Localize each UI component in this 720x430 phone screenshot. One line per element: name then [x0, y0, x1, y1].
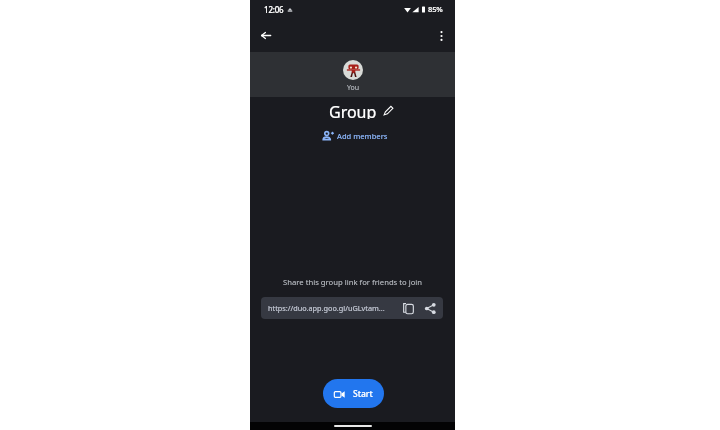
staticText: https://duo.app.goo.gl/uGLvtam...: [268, 303, 397, 313]
staticText: You: [347, 83, 360, 93]
staticText: Add members: [337, 131, 388, 141]
button[interactable]: Add members: [319, 129, 392, 143]
button[interactable]: Copy link: [397, 297, 419, 319]
button[interactable]: Start: [323, 379, 384, 408]
button[interactable]: You: [343, 60, 363, 93]
button[interactable]: Back: [255, 25, 276, 46]
staticText: 12:06: [264, 4, 284, 15]
button[interactable]: Group: [329, 101, 394, 119]
staticText: 85%: [428, 4, 443, 14]
button[interactable]: Share link: [419, 297, 441, 319]
staticText: Start: [353, 388, 373, 400]
button[interactable]: More options: [431, 25, 452, 46]
staticText: Group: [329, 101, 377, 119]
staticText: Share this group link for friends to joi…: [283, 277, 423, 287]
